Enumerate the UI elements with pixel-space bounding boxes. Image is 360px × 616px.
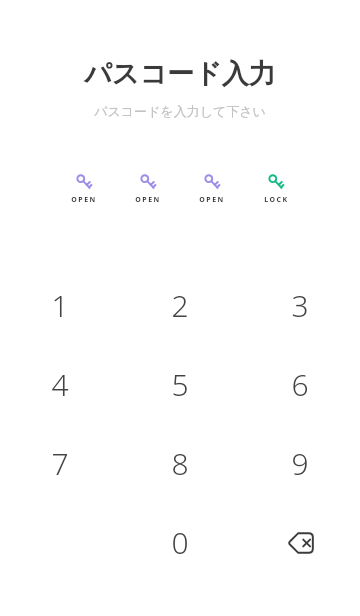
- button[interactable]: 9: [240, 424, 360, 503]
- staticText: パスコード入力: [84, 57, 276, 91]
- button[interactable]: Locked passcode slot: [254, 175, 298, 205]
- staticText: OPEN: [71, 195, 97, 205]
- button[interactable]: 3: [240, 266, 360, 345]
- staticText: 2: [171, 285, 189, 326]
- button[interactable]: Open passcode slot: [190, 175, 234, 205]
- button[interactable]: 7: [0, 424, 120, 503]
- button[interactable]: Delete: [240, 503, 360, 582]
- staticText: 5: [171, 364, 189, 405]
- button[interactable]: 5: [120, 345, 240, 424]
- button[interactable]: Open passcode slot: [62, 175, 106, 205]
- button[interactable]: 0: [120, 503, 240, 582]
- staticText: LOCK: [264, 195, 289, 205]
- button[interactable]: 4: [0, 345, 120, 424]
- staticText: OPEN: [135, 195, 161, 205]
- staticText: 8: [171, 443, 189, 484]
- button[interactable]: 8: [120, 424, 240, 503]
- staticText: 0: [171, 522, 189, 563]
- staticText: 4: [51, 364, 69, 405]
- button[interactable]: Open passcode slot: [126, 175, 170, 205]
- staticText: 7: [51, 443, 69, 484]
- staticText: OPEN: [199, 195, 225, 205]
- button[interactable]: 2: [120, 266, 240, 345]
- button[interactable]: 6: [240, 345, 360, 424]
- button[interactable]: 1: [0, 266, 120, 345]
- staticText: 3: [291, 285, 309, 326]
- staticText: 9: [291, 443, 309, 484]
- staticText: 6: [291, 364, 309, 405]
- staticText: 1: [51, 285, 69, 326]
- staticText: パスコードを入力して下さい: [94, 103, 266, 119]
